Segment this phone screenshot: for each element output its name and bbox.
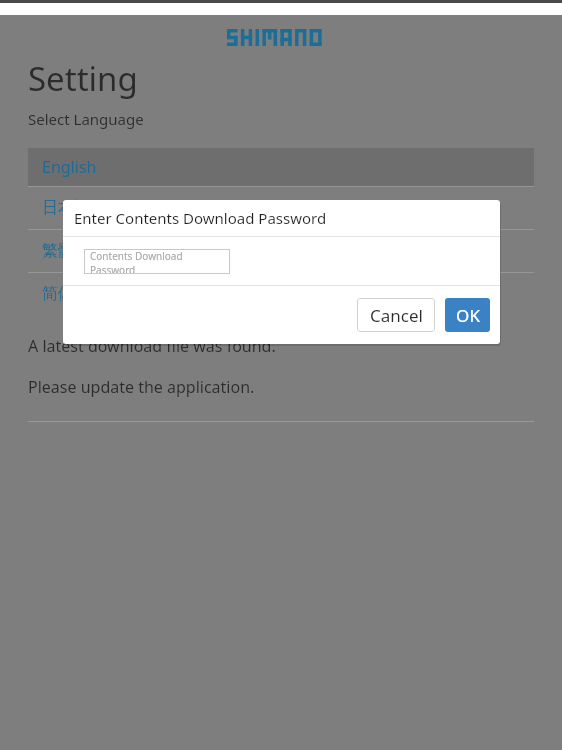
button[interactable]: Contents Download Password — [84, 249, 230, 274]
staticText: Select Language — [28, 109, 144, 129]
staticText: Enter Contents Download Password — [74, 208, 327, 228]
staticText: Cancel — [370, 304, 423, 327]
staticText: OK — [456, 304, 480, 327]
button[interactable]: OK — [445, 298, 490, 332]
staticText: Contents Download Password — [90, 249, 230, 274]
staticText: English — [42, 156, 97, 178]
staticText: 繁體中文 — [42, 241, 106, 261]
button[interactable]: English — [28, 148, 534, 186]
staticText: Setting — [28, 56, 138, 101]
button[interactable]: 简体中文 — [28, 273, 534, 315]
button[interactable]: 繁體中文 — [28, 230, 534, 272]
button[interactable]: Cancel — [357, 298, 435, 332]
staticText: 简体中文 — [42, 284, 106, 304]
staticText: Please update the application. — [28, 376, 255, 398]
button[interactable]: 日本語 — [28, 187, 534, 229]
staticText: 日本語 — [42, 198, 90, 218]
staticText: A latest download file was found. — [28, 335, 276, 357]
